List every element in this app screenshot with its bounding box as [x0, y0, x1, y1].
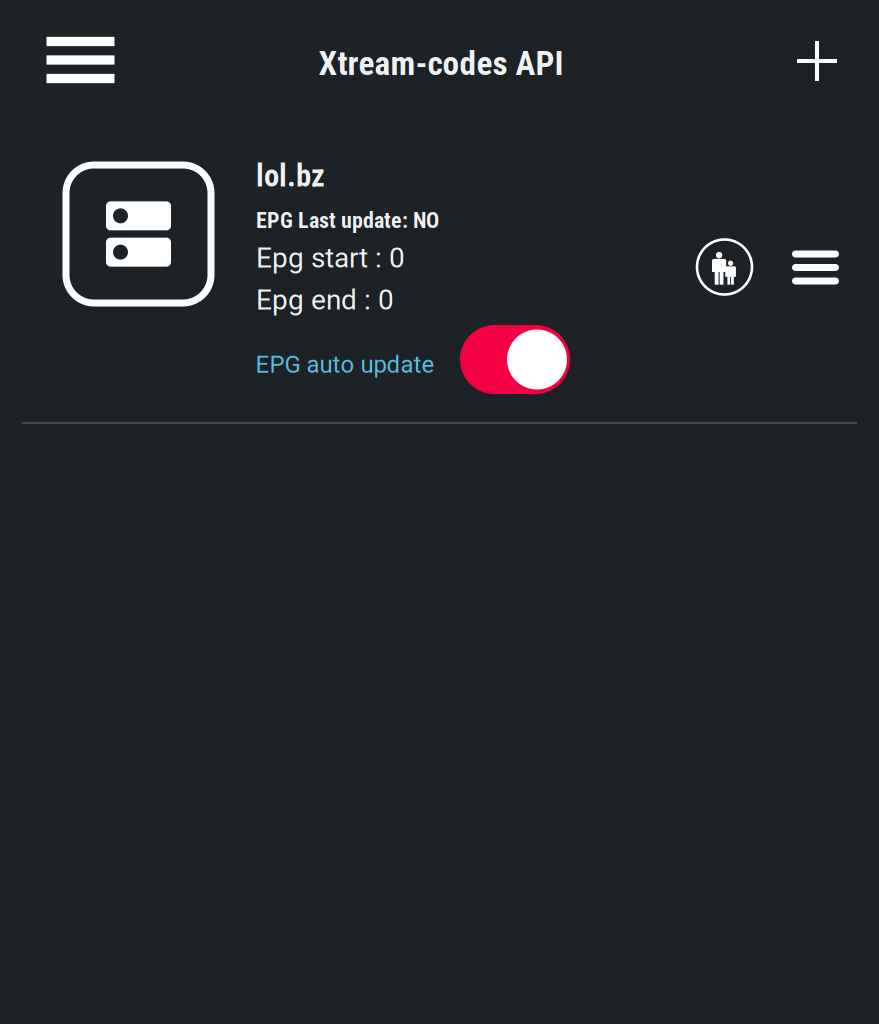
staticText: Epg end : 0 [256, 284, 394, 316]
button[interactable]: lol.bz [0, 111, 660, 361]
button[interactable]: EPG auto update switch, on [454, 319, 576, 400]
staticText: lol.bz [256, 158, 325, 194]
button[interactable]: Add playlist [779, 23, 855, 99]
staticText: EPG auto update [255, 350, 434, 378]
button[interactable]: Menu [30, 21, 130, 99]
staticText: EPG Last update: NO [256, 208, 439, 233]
staticText: Epg start : 0 [256, 242, 405, 274]
button[interactable]: EPG auto update [247, 342, 463, 386]
button[interactable]: Parental control [685, 227, 764, 306]
staticText: Xtream-codes API [318, 44, 563, 83]
button[interactable]: Playlist options [778, 236, 853, 298]
